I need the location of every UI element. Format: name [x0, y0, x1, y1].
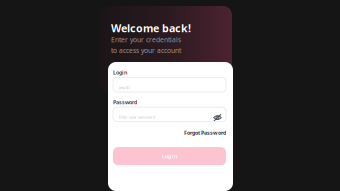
staticText: Password: [113, 99, 137, 106]
staticText: Log in: [162, 153, 177, 160]
staticText: Forgot Password: [184, 129, 226, 136]
button[interactable]: Log in: [113, 147, 226, 165]
button[interactable]: Forgot Password: [113, 129, 226, 137]
staticText: Login: [113, 69, 127, 76]
staticText: to access your account: [111, 46, 181, 55]
staticText: php ID: [119, 85, 130, 90]
staticText: Enter your credentials: [111, 35, 181, 44]
staticText: Welcome back!: [111, 21, 191, 35]
staticText: Enter your password: [119, 114, 155, 120]
